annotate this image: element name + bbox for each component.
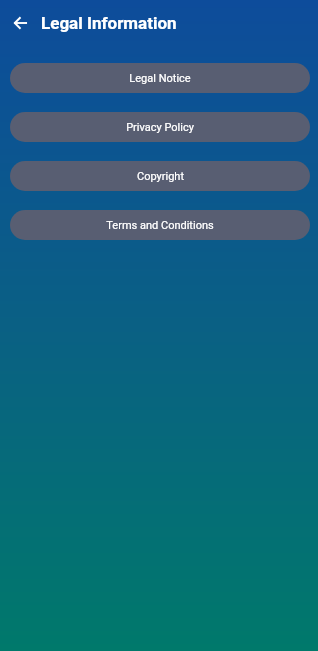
button[interactable]: Terms and Conditions: [10, 210, 310, 240]
button[interactable]: Back: [4, 7, 36, 39]
button[interactable]: Legal Notice: [10, 63, 310, 93]
staticText: Terms and Conditions: [106, 219, 214, 232]
staticText: Copyright: [137, 170, 184, 183]
button[interactable]: Copyright: [10, 161, 310, 191]
staticText: Legal Notice: [129, 72, 191, 85]
staticText: Legal Information: [41, 13, 177, 33]
button[interactable]: Privacy Policy: [10, 112, 310, 142]
staticText: Privacy Policy: [126, 121, 194, 134]
